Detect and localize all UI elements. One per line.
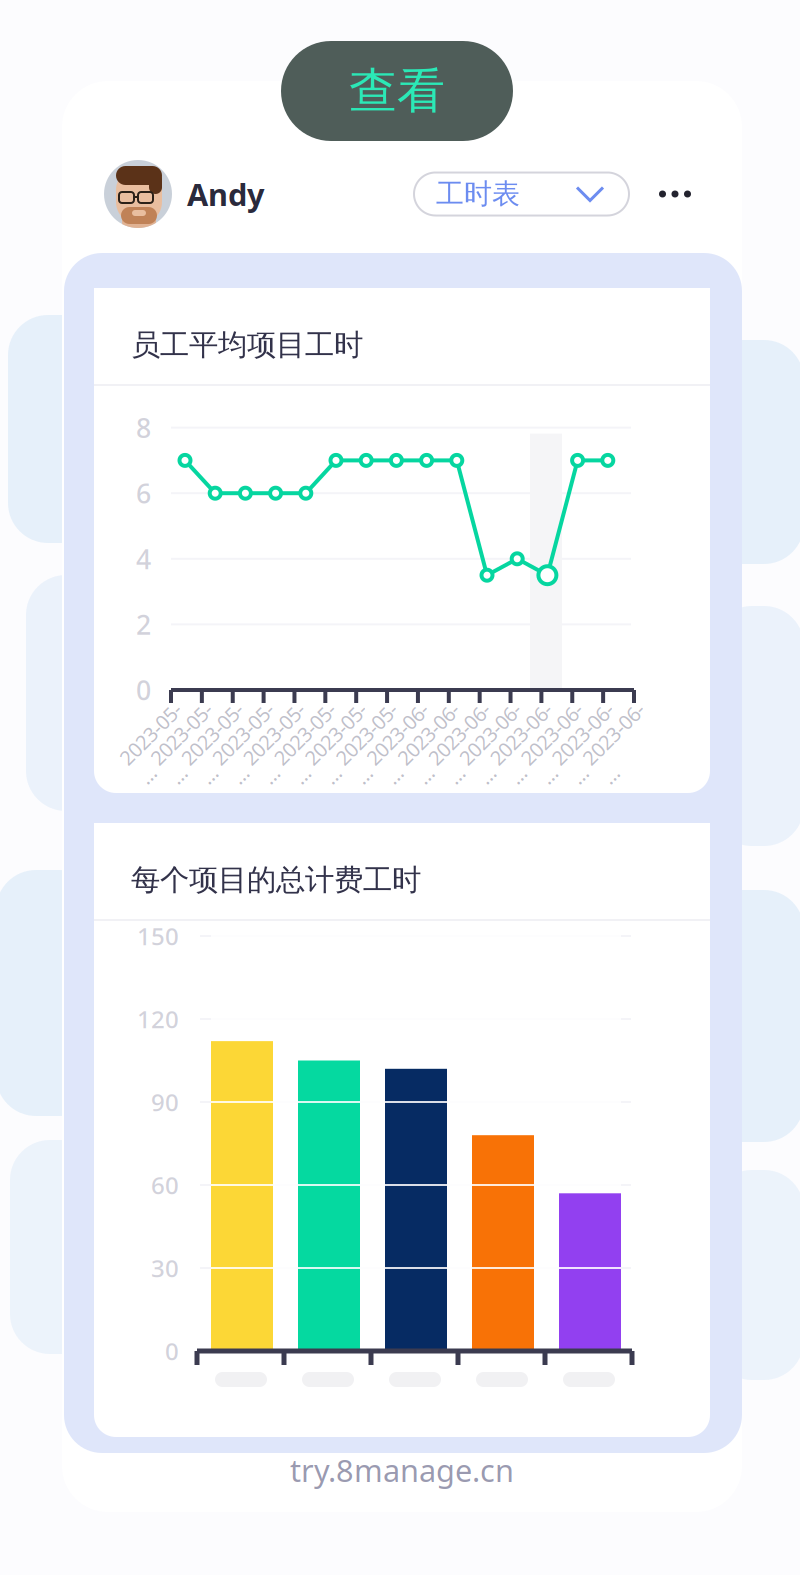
staticText: 2023-06-… (523, 719, 601, 772)
staticText: 2023-06-… (461, 719, 539, 772)
staticText: 2023-05-… (122, 719, 200, 772)
staticText: 2023-05-… (153, 719, 231, 772)
staticText: 2023-06-… (369, 719, 447, 772)
staticText: 2023-05-… (307, 719, 385, 772)
staticText: 每个项目的总计费工时 (131, 862, 421, 898)
staticText: 2023-05-… (184, 719, 262, 772)
staticText: try.8manage.cn (290, 1450, 514, 1490)
staticText: 2023-05-… (245, 719, 323, 772)
staticText: 2023-06-… (400, 719, 478, 772)
staticText: 2023-05-… (276, 719, 354, 772)
button[interactable]: 查看 (281, 41, 513, 141)
staticText: 0 (136, 672, 151, 708)
staticText: 30 (151, 1252, 179, 1284)
staticText: 150 (137, 920, 179, 952)
button[interactable]: More options (629, 168, 721, 220)
staticText: 120 (137, 1003, 179, 1035)
staticText: 4 (136, 541, 151, 576)
staticText: 员工平均项目工时 (131, 327, 363, 363)
staticText: 2023-06-… (492, 719, 570, 772)
staticText: 2023-06-… (431, 719, 509, 772)
staticText: 6 (136, 475, 151, 511)
staticText: 2023-06-… (554, 719, 632, 772)
staticText: 0 (165, 1335, 179, 1367)
staticText: 2023-05-… (215, 719, 293, 772)
staticText: 工时表 (436, 177, 520, 211)
staticText: 8 (136, 410, 151, 445)
staticText: 2023-05-… (338, 719, 416, 772)
staticText: 60 (151, 1169, 179, 1201)
staticText: 90 (151, 1086, 179, 1118)
staticText: 查看 (349, 61, 445, 120)
button[interactable]: 工时表 (414, 172, 629, 215)
staticText: 2 (136, 607, 151, 642)
staticText: 2023-06-… (585, 719, 663, 772)
staticText: Andy (187, 174, 265, 214)
